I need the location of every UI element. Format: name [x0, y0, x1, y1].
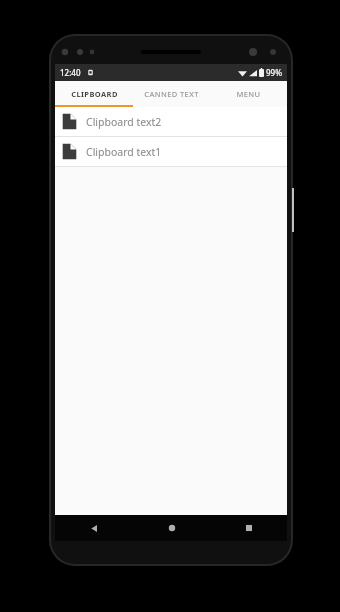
button[interactable]: CLIPBOARD [55, 81, 133, 107]
button[interactable]: Clipboard text1 [55, 137, 287, 166]
staticText: Clipboard text1 [86, 145, 162, 159]
button[interactable]: Back [55, 515, 133, 541]
staticText: CANNED TEXT [144, 89, 199, 99]
button[interactable]: MENU [210, 81, 287, 107]
button[interactable]: Home [133, 515, 210, 541]
staticText: Clipboard text2 [86, 115, 162, 129]
button[interactable]: Clipboard text2 [55, 107, 287, 136]
button[interactable]: Recent apps [210, 515, 287, 541]
staticText: CLIPBOARD [71, 89, 118, 99]
staticText: 99% [266, 67, 282, 78]
staticText: MENU [236, 89, 261, 99]
button[interactable]: CANNED TEXT [133, 81, 210, 107]
staticText: 12:40 [60, 67, 81, 78]
